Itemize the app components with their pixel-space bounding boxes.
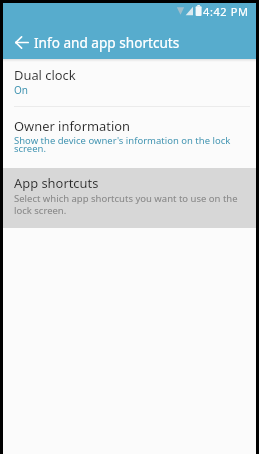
button[interactable]: Owner information (3, 107, 256, 169)
staticText: Show the device owner's information on t… (14, 134, 231, 147)
staticText: lock screen. (14, 204, 67, 217)
staticText: screen. (14, 142, 46, 155)
staticText: Dual clock (14, 66, 76, 84)
button[interactable]: Dual clock (3, 59, 256, 106)
staticText: Info and app shortcuts (34, 33, 180, 52)
button[interactable] (15, 36, 29, 49)
staticText: App shortcuts (14, 174, 99, 192)
staticText: On (14, 83, 28, 97)
button[interactable]: App shortcuts (3, 168, 256, 228)
staticText: 4:42 PM (203, 4, 249, 19)
staticText: Select which app shortcuts you want to u… (14, 192, 238, 205)
staticText: Owner information (14, 117, 130, 135)
